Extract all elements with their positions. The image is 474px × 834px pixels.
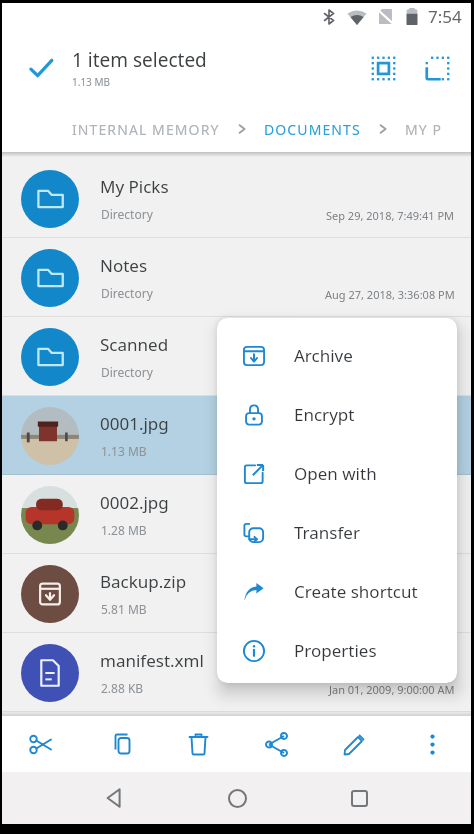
staticText: manifest.xml	[100, 649, 204, 672]
staticText: My Picks	[100, 175, 169, 198]
staticText: 7:54	[428, 5, 462, 28]
button[interactable]	[217, 778, 257, 818]
button[interactable]	[237, 716, 315, 772]
button[interactable]: Encrypt	[217, 385, 457, 444]
button[interactable]	[2, 716, 81, 772]
staticText: 5.81 MB	[101, 601, 147, 617]
button[interactable]: MY P	[405, 120, 443, 139]
staticText: Directory	[101, 206, 153, 222]
button[interactable]: Properties	[217, 621, 457, 680]
button[interactable]	[29, 56, 53, 80]
button[interactable]	[417, 48, 457, 88]
staticText: Create shortcut	[294, 580, 418, 603]
staticText: Transfer	[294, 521, 360, 544]
staticText: Aug 27, 2018, 3:36:08 PM	[325, 287, 455, 302]
button[interactable]: INTERNAL MEMORY	[72, 120, 220, 139]
staticText: 1.13 MB	[101, 443, 147, 459]
button[interactable]: DOCUMENTS	[264, 120, 361, 139]
staticText: Properties	[294, 639, 377, 662]
button[interactable]: My Picks	[2, 159, 471, 238]
button[interactable]: Transfer	[217, 503, 457, 562]
button[interactable]	[315, 716, 393, 772]
staticText: Open with	[294, 462, 377, 485]
button[interactable]	[339, 778, 379, 818]
staticText: 1.28 MB	[101, 522, 147, 538]
button[interactable]	[393, 716, 471, 772]
staticText: 0001.jpg	[100, 412, 169, 435]
button[interactable]: 0001.jpg	[2, 396, 471, 475]
staticText: Directory	[101, 285, 153, 301]
staticText: Encrypt	[294, 403, 355, 426]
staticText: Archive	[294, 344, 353, 367]
button[interactable]	[363, 48, 403, 88]
button[interactable]: 0002.jpg	[2, 475, 471, 554]
button[interactable]: Archive	[217, 326, 457, 385]
button[interactable]: Scanned	[2, 317, 471, 396]
staticText: 0002.jpg	[100, 491, 169, 514]
button[interactable]: Create shortcut	[217, 562, 457, 621]
staticText: 1.13 MB	[72, 75, 111, 89]
staticText: Backup.zip	[100, 570, 187, 593]
button[interactable]: Backup.zip	[2, 554, 471, 633]
button[interactable]: Notes	[2, 238, 471, 317]
staticText: Sep 29, 2018, 7:49:41 PM	[326, 208, 455, 223]
button[interactable]	[159, 716, 237, 772]
staticText: Directory	[101, 364, 153, 380]
button[interactable]: manifest.xml	[2, 633, 471, 712]
staticText: Jan 01, 2009, 9:00:00 AM	[329, 682, 455, 697]
staticText: 1 item selected	[72, 47, 207, 73]
button[interactable]	[81, 716, 159, 772]
button[interactable]: Open with	[217, 444, 457, 503]
button[interactable]	[94, 778, 134, 818]
staticText: 2.88 KB	[101, 680, 144, 696]
staticText: Scanned	[100, 333, 169, 356]
staticText: Notes	[100, 254, 148, 277]
